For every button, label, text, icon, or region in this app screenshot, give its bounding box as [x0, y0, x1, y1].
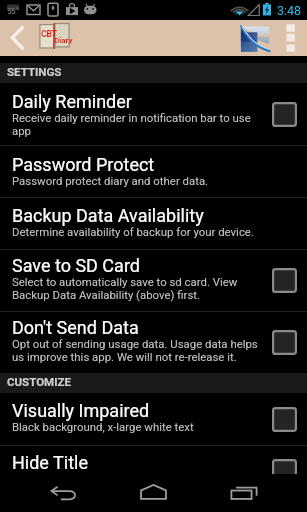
staticText: Hide Title: [12, 452, 88, 473]
staticText: Daily Reminder: [12, 91, 132, 112]
staticText: Diary: [54, 36, 73, 45]
staticText: app: [12, 124, 31, 137]
button[interactable]: Password Protect: [0, 146, 307, 197]
staticText: Backup Data Availability (above) first.: [12, 288, 201, 301]
button[interactable]: Navigate up: [0, 20, 32, 56]
button[interactable]: Home: [111, 474, 196, 512]
staticText: SETTINGS: [7, 65, 62, 78]
staticText: Visually Impaired: [12, 400, 150, 421]
button[interactable]: Recent apps: [201, 474, 286, 512]
button[interactable]: Export to Evernote: [240, 25, 270, 53]
button[interactable]: Backup Data Availability: [0, 197, 307, 249]
staticText: Opt out of sending usage data. Usage dat…: [12, 337, 258, 350]
staticText: Determine availability of backup for you…: [12, 225, 254, 238]
button[interactable]: Daily Reminder: [0, 83, 307, 145]
staticText: Save to SD Card: [12, 255, 140, 276]
button[interactable]: Hide Title: [0, 445, 307, 474]
staticText: Password protect diary and other data.: [12, 174, 209, 187]
button[interactable]: Don't Send Data: [0, 311, 307, 373]
staticText: CUSTOMIZE: [7, 375, 71, 388]
staticText: Receive daily reminder in notification b…: [12, 111, 251, 124]
staticText: us improve this app. We will not re-rele…: [12, 350, 237, 363]
button[interactable]: Back: [21, 474, 106, 512]
button[interactable]: More options: [278, 20, 302, 56]
staticText: CBT: [41, 29, 58, 39]
button[interactable]: Save to SD Card: [0, 249, 307, 311]
staticText: Black background, x-large white text: [12, 420, 194, 433]
staticText: Select to automatically save to sd card.…: [12, 275, 238, 288]
staticText: Password Protect: [12, 154, 155, 175]
button[interactable]: Visually Impaired: [0, 393, 307, 445]
staticText: 3:48: [277, 3, 302, 18]
staticText: Backup Data Availability: [12, 205, 204, 226]
staticText: Don't Send Data: [12, 317, 139, 338]
